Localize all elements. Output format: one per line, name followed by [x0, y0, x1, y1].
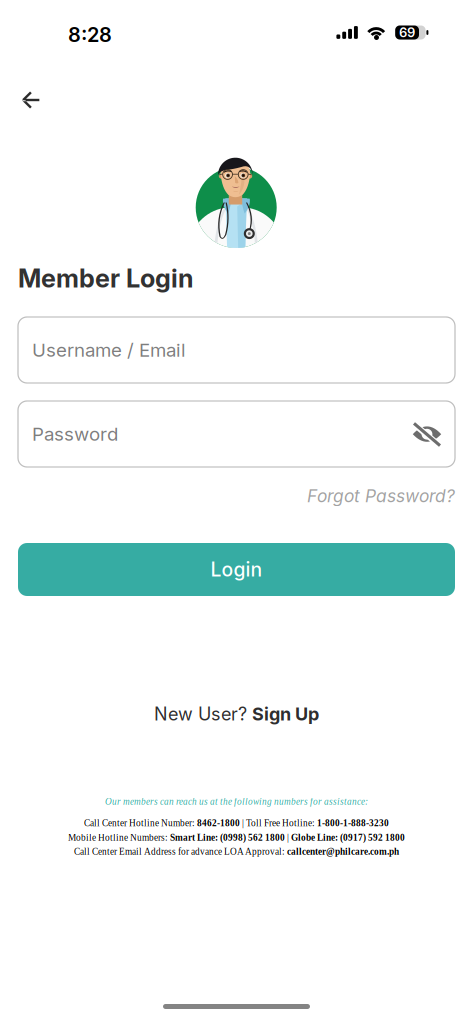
staticText: Call Center Email Address for advance LO…	[74, 846, 399, 857]
staticText: 69	[399, 25, 415, 40]
staticText: Password	[32, 423, 118, 445]
button[interactable]: New User? Sign Up	[0, 701, 473, 727]
staticText: Mobile Hotline Numbers: Smart Line: (099…	[68, 832, 405, 843]
button[interactable]: Back	[4, 79, 58, 121]
staticText: New User? Sign Up	[154, 703, 319, 725]
staticText: Login	[210, 558, 262, 581]
staticText: Our members can reach us at the followin…	[105, 796, 368, 807]
staticText: Member Login	[18, 263, 194, 294]
button[interactable]: Show password	[399, 401, 455, 467]
staticText: Username / Email	[32, 339, 186, 361]
button[interactable]: Login	[18, 543, 455, 596]
staticText: Forgot Password?	[307, 485, 455, 506]
button[interactable]: Forgot Password?	[18, 483, 455, 509]
staticText: 8:28	[68, 22, 112, 47]
staticText: Call Center Hotline Number: 8462-1800 | …	[84, 818, 389, 828]
